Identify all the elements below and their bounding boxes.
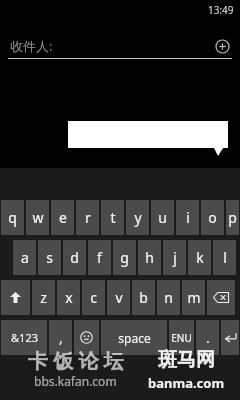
staticText: . <box>206 328 210 347</box>
staticText: space <box>118 330 151 346</box>
button[interactable]: a <box>13 240 36 275</box>
staticText: g <box>120 248 129 267</box>
button[interactable]: Comma <box>49 320 72 355</box>
staticText: 卡 饭 论 坛 <box>28 347 124 374</box>
button[interactable]: t <box>101 200 124 235</box>
staticText: k <box>196 248 204 267</box>
staticText: q <box>8 208 17 227</box>
staticText: 收件人: <box>10 37 53 55</box>
button[interactable]: l <box>213 240 236 275</box>
staticText: v <box>115 288 123 307</box>
staticText: y <box>134 208 142 227</box>
button[interactable]: p <box>226 200 239 235</box>
staticText: h <box>145 248 154 267</box>
button[interactable]: b <box>132 280 155 315</box>
staticText: w <box>32 208 44 227</box>
button[interactable]: &123 <box>1 320 47 355</box>
button[interactable]: d <box>63 240 86 275</box>
button[interactable]: v <box>107 280 130 315</box>
staticText: i <box>186 208 190 227</box>
button[interactable]: e <box>51 200 74 235</box>
button[interactable]: c <box>82 280 105 315</box>
staticText: banma.com <box>148 374 225 392</box>
staticText: , <box>59 328 63 347</box>
button[interactable]: i <box>176 200 199 235</box>
staticText: 13:49 <box>208 3 234 17</box>
button[interactable]: s <box>38 240 61 275</box>
button[interactable]: o <box>201 200 224 235</box>
staticText: o <box>208 208 217 227</box>
staticText: x <box>65 288 73 307</box>
button[interactable]: k <box>188 240 211 275</box>
staticText: j <box>173 248 177 267</box>
button[interactable]: j <box>163 240 186 275</box>
button[interactable]: ENU <box>169 320 194 355</box>
button[interactable]: r <box>76 200 99 235</box>
button[interactable]: q <box>1 200 24 235</box>
button[interactable]: . <box>196 320 219 355</box>
staticText: d <box>70 248 79 267</box>
button[interactable]: y <box>126 200 149 235</box>
button[interactable]: n <box>157 280 180 315</box>
staticText: c <box>90 288 97 307</box>
button[interactable]: f <box>88 240 111 275</box>
staticText: ENU <box>171 331 192 345</box>
staticText: m <box>187 288 201 307</box>
staticText: bbs.kafan.com <box>34 373 117 389</box>
button[interactable]: g <box>113 240 136 275</box>
button[interactable]: space <box>101 320 167 355</box>
button[interactable]: h <box>138 240 161 275</box>
button[interactable]: z <box>32 280 55 315</box>
staticText: u <box>158 208 167 227</box>
staticText: s <box>46 248 53 267</box>
button[interactable]: w <box>26 200 49 235</box>
button[interactable]: u <box>151 200 174 235</box>
button[interactable]: Shift <box>1 280 30 315</box>
staticText: p <box>228 208 237 227</box>
staticText: b <box>139 288 148 307</box>
staticText: l <box>223 248 227 267</box>
button[interactable]: Add recipient <box>212 36 232 56</box>
staticText: e <box>59 208 67 227</box>
staticText: 斑马网 <box>158 348 215 372</box>
staticText: z <box>40 288 47 307</box>
staticText: a <box>21 248 29 267</box>
staticText: t <box>110 208 116 227</box>
button[interactable]: Emoji <box>74 320 99 355</box>
staticText: r <box>85 208 91 227</box>
button[interactable]: 收件人: <box>0 32 240 60</box>
button[interactable]: m <box>182 280 205 315</box>
staticText: f <box>97 248 102 267</box>
button[interactable]: Enter <box>221 320 239 355</box>
button[interactable]: x <box>57 280 80 315</box>
staticText: &123 <box>11 330 38 345</box>
staticText: n <box>164 288 173 307</box>
button[interactable]: Backspace <box>207 280 235 315</box>
